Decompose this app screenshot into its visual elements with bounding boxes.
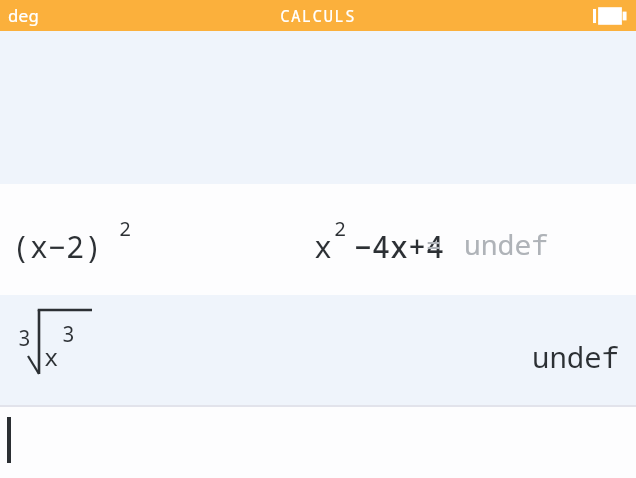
staticText: undef: [464, 225, 549, 263]
button[interactable]: Battery: [592, 5, 628, 27]
staticText: undef: [532, 337, 620, 376]
staticText: =: [426, 227, 442, 262]
staticText: x: [314, 226, 332, 267]
staticText: 3: [18, 324, 31, 353]
staticText: 3: [62, 320, 75, 349]
staticText: (x−2): [12, 226, 102, 267]
button[interactable]: (x−2): [0, 184, 636, 295]
button[interactable]: [0, 407, 636, 478]
staticText: x: [44, 340, 59, 373]
staticText: 2: [334, 215, 346, 242]
staticText: CALCULS: [280, 5, 356, 27]
button[interactable]: 3: [0, 295, 636, 405]
staticText: −4x+4: [354, 226, 444, 267]
staticText: deg: [8, 4, 39, 27]
button[interactable]: deg: [6, 2, 41, 29]
staticText: 2: [119, 215, 131, 242]
